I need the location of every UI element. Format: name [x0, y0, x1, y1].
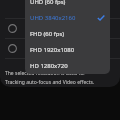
staticText: The selected resolution is used for	[5, 70, 86, 77]
staticText: FHD (60 fps) 1920x1080	[30, 30, 93, 38]
button[interactable]: UHD 3840x2160	[25, 10, 110, 26]
button[interactable]: HD 1280x720	[25, 58, 110, 74]
other: Select resolution option	[8, 44, 17, 53]
staticText: FHD 1920x1080	[30, 46, 75, 54]
staticText: Tracking auto-focus and Video effects.	[5, 79, 95, 86]
button[interactable]: FHD 1920x1080	[25, 42, 110, 58]
staticText: HD 1280x720	[30, 62, 68, 70]
button[interactable]: FHD (60 fps) 1920x1080	[25, 26, 110, 42]
staticText: UHD (60 fps) 3840x2160	[30, 0, 93, 6]
other: Currently selected	[97, 14, 105, 22]
button[interactable]: UHD (60 fps) 3840x2160	[25, 0, 110, 10]
button[interactable]: Select resolution option	[0, 38, 120, 58]
other: Select resolution option	[8, 24, 17, 33]
staticText: UHD 3840x2160	[30, 14, 76, 22]
button[interactable]: Select resolution option	[0, 18, 120, 38]
